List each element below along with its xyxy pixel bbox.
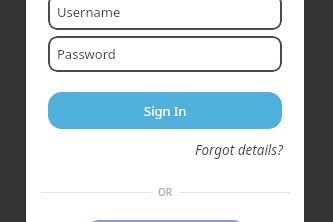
button[interactable]: Sign In — [48, 92, 282, 129]
button[interactable] — [88, 220, 244, 222]
button[interactable]: Username — [48, 0, 282, 30]
staticText: Password — [57, 45, 116, 63]
button[interactable]: Password — [48, 36, 282, 72]
staticText: Username — [57, 3, 121, 21]
staticText: OR — [158, 185, 173, 199]
button[interactable]: Forgot details? — [195, 141, 283, 159]
staticText: Sign In — [144, 102, 187, 120]
